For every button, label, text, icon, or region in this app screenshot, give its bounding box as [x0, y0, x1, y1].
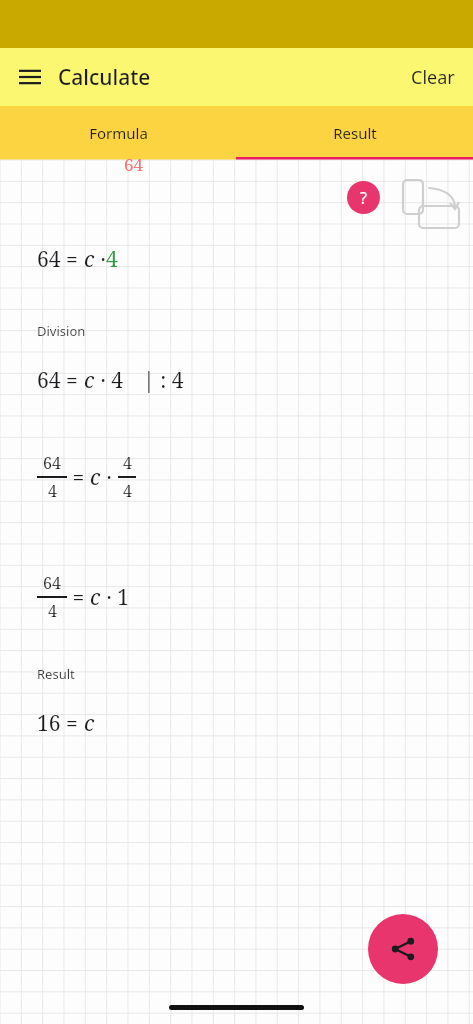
staticText: Division	[37, 322, 86, 340]
button[interactable]: Result	[236, 106, 473, 160]
staticText: 4	[48, 600, 57, 622]
button[interactable]: Formula	[0, 106, 236, 160]
staticText: c	[90, 463, 101, 492]
button[interactable]: Clear	[397, 53, 469, 102]
button[interactable]: Help	[347, 181, 380, 214]
staticText: Result	[37, 665, 75, 683]
staticText: | : 4	[143, 366, 184, 395]
staticText: · 1	[101, 583, 129, 612]
staticText: c	[84, 245, 95, 274]
staticText: =	[67, 463, 90, 492]
staticText: 64	[124, 153, 144, 176]
staticText: 64 =	[37, 245, 84, 274]
staticText: Result	[333, 123, 377, 143]
staticText: ·	[101, 463, 118, 492]
button[interactable]: Rotate device	[401, 178, 451, 218]
staticText: 4	[48, 480, 57, 502]
staticText: 4	[106, 245, 118, 274]
staticText: 4	[123, 452, 132, 474]
button[interactable]: Menu	[8, 55, 52, 99]
staticText: ·	[95, 245, 106, 274]
staticText: c	[90, 583, 101, 612]
staticText: =	[67, 583, 90, 612]
staticText: 4	[123, 480, 132, 502]
staticText: Calculate	[58, 63, 151, 92]
staticText: Clear	[411, 65, 455, 90]
staticText: c	[84, 709, 95, 738]
staticText: 16 =	[37, 709, 84, 738]
staticText: · 4	[95, 366, 123, 395]
staticText: 64 =	[37, 366, 84, 395]
staticText: 64	[43, 572, 61, 594]
staticText: Formula	[89, 123, 148, 143]
button[interactable]: Share	[368, 914, 438, 984]
staticText: 64	[43, 452, 61, 474]
staticText: c	[84, 366, 95, 395]
staticText: ?	[360, 187, 367, 209]
